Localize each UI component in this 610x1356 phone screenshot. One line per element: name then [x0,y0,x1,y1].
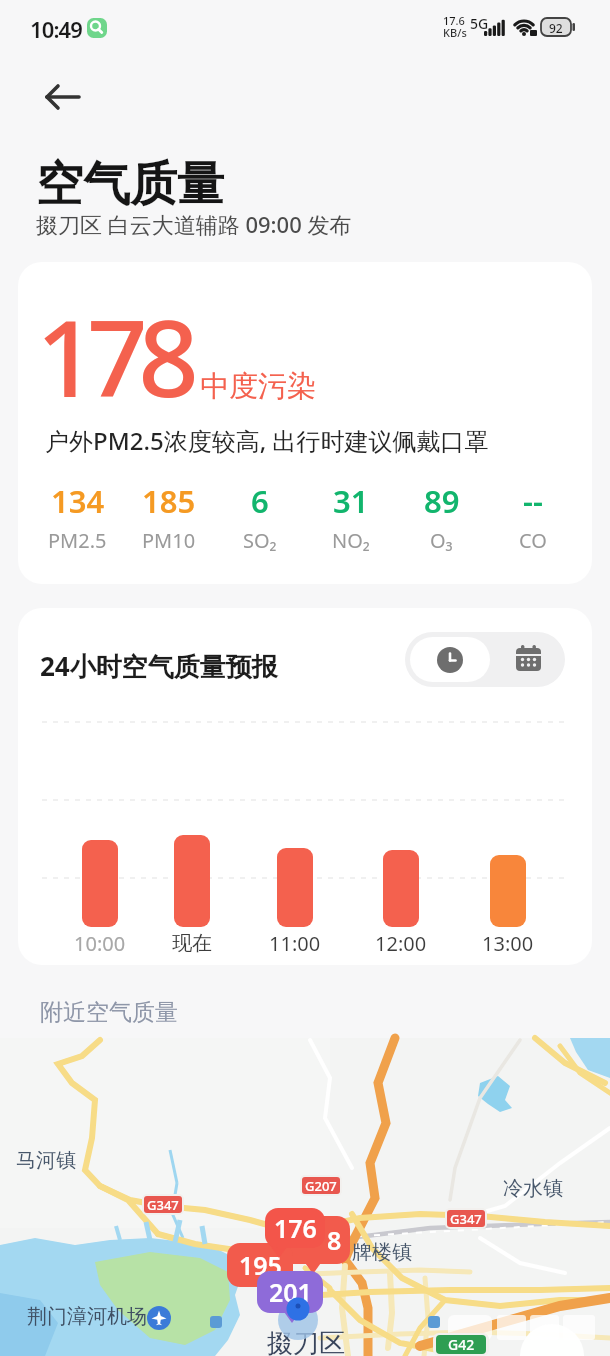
staticText: 178 [36,284,190,428]
staticText: 24小时空气质量预报 [40,648,278,684]
staticText: 13:00 [482,930,534,956]
button[interactable]: 12:00 [361,930,441,956]
staticText: 201 [269,1275,312,1309]
staticText: 附近空气质量 [40,998,178,1027]
staticText: 92 [549,20,563,36]
button[interactable]: 195 [227,1243,293,1287]
staticText: 134 [51,480,105,522]
staticText: 户外PM2.5浓度较高, 出行时建议佩戴口罩 [45,424,489,457]
staticText: PM10 [142,527,196,554]
staticText: 185 [142,480,196,522]
staticText: CO [519,527,547,554]
staticText: 11:00 [269,930,321,956]
staticText: NO₂ [332,527,370,554]
staticText: 17.6 [443,13,465,28]
staticText: 10:49 [30,14,83,44]
button[interactable]: 31 [305,480,396,554]
staticText: 掇刀区 [267,1327,345,1356]
staticText: 现在 [172,931,212,956]
staticText: KB/s [443,25,467,40]
button[interactable]: 185 [123,480,214,554]
staticText: O₃ [430,527,453,554]
staticText: 176 [274,1211,317,1245]
staticText: G347 [147,1196,179,1213]
staticText: 空气质量 [36,155,224,214]
staticText: 8 [327,1223,342,1257]
button[interactable]: 8 [280,1216,350,1264]
button[interactable]: 89 [396,480,487,554]
button[interactable]: 现在 [152,930,232,956]
staticText: 掇刀区 白云大道辅路 09:00 发布 [36,209,352,239]
staticText: 10:00 [74,930,126,956]
staticText: -- [523,480,543,522]
staticText: 31 [333,480,369,522]
staticText: PM2.5 [48,527,107,554]
button[interactable]: G207 [0,1038,610,1356]
staticText: 89 [424,480,460,522]
button[interactable]: 201 [257,1271,323,1313]
staticText: G42 [448,1335,475,1354]
button[interactable] [410,637,490,682]
staticText: 5G [470,14,489,33]
button[interactable] [515,645,543,673]
button[interactable] [44,84,82,112]
button[interactable]: 134 [32,480,123,554]
staticText: 冷水镇 [503,1176,563,1201]
button[interactable]: 11:00 [255,930,335,956]
staticText: 牌楼镇 [352,1240,412,1265]
button[interactable]: -- [487,480,578,554]
staticText: SO₂ [243,527,277,554]
staticText: 中度污染 [200,368,316,405]
staticText: 马河镇 [16,1148,76,1173]
staticText: 荆门漳河机场 [27,1304,147,1329]
button[interactable]: 13:00 [468,930,548,956]
staticText: G207 [305,1177,337,1194]
staticText: 12:00 [375,930,427,956]
button[interactable]: 10:00 [60,930,140,956]
staticText: G347 [450,1210,482,1227]
staticText: 6 [251,480,269,522]
staticText: 195 [239,1248,282,1282]
button[interactable]: 6 [214,480,305,554]
button[interactable]: 176 [265,1208,325,1248]
